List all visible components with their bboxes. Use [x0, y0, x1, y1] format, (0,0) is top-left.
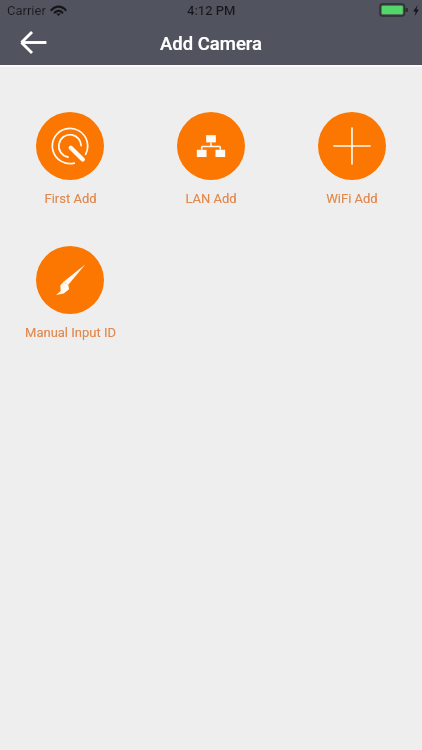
- staticText: 4:12 PM: [187, 3, 236, 18]
- staticText: LAN Add: [185, 191, 237, 206]
- button[interactable]: WiFi Add: [281, 112, 422, 206]
- button[interactable]: LAN Add: [140, 112, 281, 206]
- staticText: First Add: [44, 191, 97, 206]
- staticText: Add Camera: [160, 33, 262, 55]
- staticText: Carrier: [7, 3, 46, 18]
- staticText: WiFi Add: [326, 191, 378, 206]
- button[interactable]: First Add: [0, 112, 140, 206]
- button[interactable]: Manual Input ID: [0, 246, 140, 340]
- staticText: Manual Input ID: [25, 325, 116, 340]
- button[interactable]: Back: [0, 20, 54, 65]
